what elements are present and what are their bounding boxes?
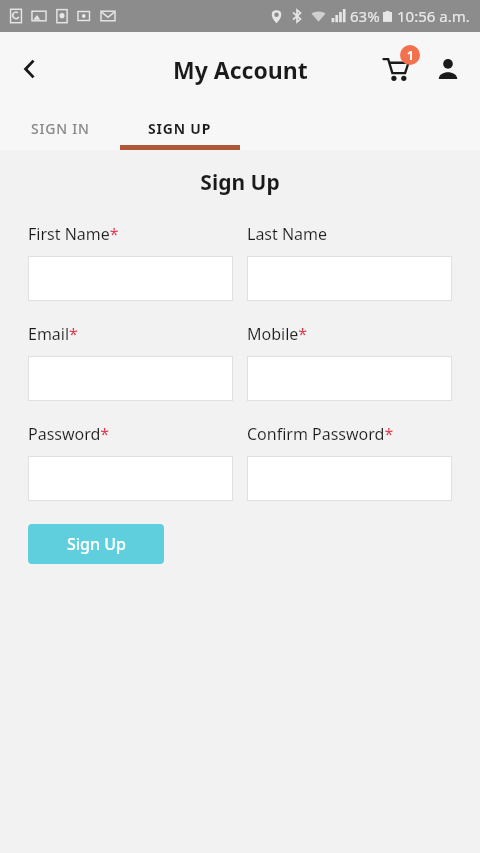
button[interactable] [247, 256, 452, 301]
button[interactable]: Profile [422, 43, 474, 95]
staticText: Mobile* [247, 323, 308, 345]
button[interactable]: SIGN UP [120, 106, 240, 150]
button[interactable]: SIGN IN [0, 106, 120, 150]
staticText: Sign Up [28, 168, 452, 197]
button[interactable] [28, 256, 233, 301]
button[interactable] [28, 456, 233, 501]
button[interactable] [28, 356, 233, 401]
button[interactable]: Sign Up [28, 524, 164, 564]
staticText: SIGN UP [148, 119, 212, 138]
button[interactable] [247, 356, 452, 401]
staticText: 63% [350, 6, 380, 26]
staticText: Password* [28, 423, 110, 445]
button[interactable]: Cart [370, 43, 422, 95]
staticText: First Name* [28, 223, 119, 245]
staticText: Sign Up [67, 533, 126, 555]
staticText: SIGN IN [31, 119, 90, 138]
staticText: Last Name [247, 223, 328, 245]
button[interactable]: Back [6, 45, 54, 93]
staticText: 10:56 a.m. [397, 6, 470, 26]
staticText: My Account [173, 54, 308, 85]
button[interactable] [247, 456, 452, 501]
staticText: 1 [407, 47, 414, 63]
staticText: Email* [28, 323, 78, 345]
staticText: Confirm Password* [247, 423, 394, 445]
